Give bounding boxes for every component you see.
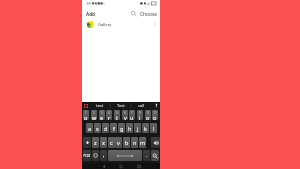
staticText: w — [92, 114, 97, 120]
button[interactable]: . — [143, 150, 150, 161]
staticText: . — [146, 152, 148, 159]
staticText: 6 — [124, 111, 126, 115]
button[interactable]: Emoji — [92, 150, 99, 161]
button[interactable]: Choose — [140, 11, 158, 18]
staticText: ?123 — [83, 153, 91, 158]
button[interactable]: 0 — [152, 110, 158, 120]
staticText: n — [133, 139, 137, 146]
button[interactable]: h — [126, 123, 133, 133]
button[interactable]: b — [123, 137, 130, 148]
button[interactable]: 7 — [129, 110, 135, 120]
button[interactable]: x — [100, 137, 107, 148]
staticText: j — [137, 125, 139, 132]
staticText: f — [113, 125, 115, 132]
button[interactable]: k — [142, 123, 149, 133]
button[interactable]: Add — [86, 11, 95, 17]
staticText: u — [130, 114, 134, 120]
staticText: g — [120, 125, 124, 132]
button[interactable]: Voice input — [154, 103, 159, 108]
staticText: i — [139, 114, 141, 120]
staticText: t — [116, 114, 118, 120]
button[interactable]: 2 — [91, 110, 97, 120]
button[interactable]: Keyboard settings — [84, 104, 88, 108]
staticText: 4 — [108, 111, 110, 115]
button[interactable]: z — [92, 137, 99, 148]
staticText: a — [88, 125, 92, 132]
staticText: , — [103, 152, 105, 159]
staticText: 0 — [154, 111, 156, 115]
button[interactable]: 3 — [99, 110, 105, 120]
staticText: 7 — [131, 111, 133, 115]
staticText: d — [104, 125, 108, 132]
staticText: 5 — [116, 111, 118, 115]
button[interactable]: n — [131, 137, 138, 148]
button[interactable]: ?123 — [83, 150, 91, 161]
button[interactable]: g — [118, 123, 125, 133]
staticText: k — [144, 125, 147, 132]
button[interactable]: 4 — [106, 110, 112, 120]
button[interactable]: More options — [152, 21, 158, 27]
staticText: text — [96, 103, 104, 108]
staticText: s — [96, 125, 99, 132]
staticText: z — [94, 139, 97, 146]
staticText: l — [153, 125, 155, 132]
button[interactable]: v — [115, 137, 122, 148]
staticText: 3 — [101, 111, 103, 115]
button[interactable]: a — [86, 123, 93, 133]
staticText: c — [110, 139, 113, 146]
staticText: b — [125, 139, 129, 146]
staticText: h — [128, 125, 132, 132]
button[interactable]: l — [150, 123, 157, 133]
staticText: 8 — [139, 111, 141, 115]
button[interactable]: d — [102, 123, 109, 133]
button[interactable]: s — [94, 123, 101, 133]
button[interactable]: j — [134, 123, 141, 133]
staticText: Text — [117, 103, 125, 108]
staticText: 1 — [85, 111, 87, 115]
button[interactable]: Gallery — [82, 19, 160, 30]
staticText: y — [124, 114, 127, 120]
button[interactable]: c — [108, 137, 115, 148]
staticText: m — [140, 139, 146, 146]
button[interactable]: Search — [130, 10, 137, 17]
button[interactable]: 6 — [122, 110, 128, 120]
button[interactable]: 9 — [145, 110, 151, 120]
button[interactable]: f — [110, 123, 117, 133]
button[interactable]: Backspace — [151, 137, 160, 148]
button[interactable]: Comma — [100, 150, 107, 161]
staticText: o — [146, 114, 150, 120]
button[interactable]: 1 — [83, 110, 89, 120]
staticText: call — [138, 103, 145, 108]
staticText: v — [117, 139, 120, 146]
staticText: r — [108, 114, 111, 120]
staticText: Gallery — [98, 22, 112, 27]
staticText: e — [100, 114, 104, 120]
button[interactable]: Shift — [83, 137, 91, 148]
staticText: Add — [86, 11, 95, 17]
button[interactable]: Search — [151, 150, 159, 161]
staticText: p — [153, 114, 157, 120]
button[interactable]: m — [139, 137, 146, 148]
staticText: 9 — [147, 111, 149, 115]
button[interactable]: 5 — [114, 110, 120, 120]
staticText: Choose — [140, 11, 158, 18]
staticText: x — [102, 139, 105, 146]
button[interactable]: 8 — [137, 110, 143, 120]
staticText: q — [84, 114, 88, 120]
staticText: 2 — [93, 111, 95, 115]
button[interactable]: Space — [108, 150, 142, 161]
